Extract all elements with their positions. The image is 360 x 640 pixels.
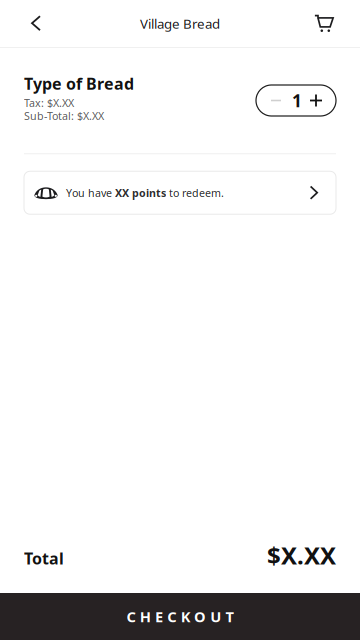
staticText: $X.XX <box>267 539 336 571</box>
button[interactable]: Decrease quantity <box>256 86 281 115</box>
staticText: Village Bread <box>140 15 220 32</box>
staticText: You have XX points to redeem. <box>66 186 224 200</box>
staticText: CHECKOUT <box>126 607 234 626</box>
button[interactable]: Cart <box>302 0 346 47</box>
staticText: Tax: $X.XX <box>24 96 74 110</box>
button[interactable]: Increase quantity <box>310 86 336 115</box>
staticText: 1 <box>292 89 302 112</box>
staticText: Type of Bread <box>24 73 134 94</box>
button[interactable]: You have XX points to redeem. <box>24 171 336 214</box>
staticText: Sub-Total: $X.XX <box>24 109 104 123</box>
button[interactable]: CHECKOUT <box>0 593 360 640</box>
button[interactable]: Back <box>14 0 58 47</box>
staticText: Total <box>24 548 64 569</box>
